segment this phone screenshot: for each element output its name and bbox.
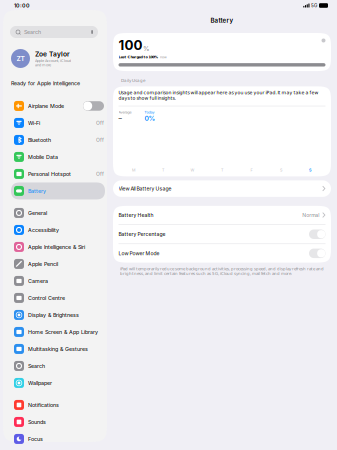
- staticText: T: [221, 168, 223, 172]
- button[interactable]: Low Power Mode: [113, 244, 331, 263]
- staticText: Daily Usage: [121, 78, 146, 83]
- staticText: Low Power Mode: [118, 250, 159, 256]
- staticText: Bluetooth: [28, 137, 51, 143]
- staticText: Search: [24, 29, 41, 35]
- staticText: Wi-Fi: [28, 120, 40, 126]
- button[interactable]: Mobile Data: [11, 148, 105, 165]
- staticText: Wallpaper: [28, 380, 52, 386]
- staticText: F: [250, 168, 252, 172]
- button[interactable]: Battery Health: [113, 206, 331, 224]
- staticText: Usage and comparison insights will appea…: [118, 90, 318, 101]
- button[interactable]: Bluetooth: [11, 131, 105, 148]
- button[interactable]: Airplane Mode: [11, 97, 105, 114]
- staticText: Battery: [28, 188, 46, 194]
- button[interactable]: Apple Pencil: [11, 255, 105, 272]
- button[interactable]: Camera: [11, 272, 105, 289]
- staticText: Apple Pencil: [28, 261, 58, 267]
- staticText: Personal Hotspot: [28, 171, 71, 177]
- button[interactable]: Apple Intelligence & Siri: [11, 238, 105, 255]
- staticText: Airplane Mode: [28, 103, 64, 109]
- button[interactable]: Battery Percentage: [113, 225, 331, 243]
- staticText: and more: [35, 63, 51, 67]
- staticText: Camera: [28, 278, 48, 284]
- staticText: Off: [96, 171, 104, 177]
- staticText: Zoe Taylor: [35, 50, 70, 58]
- button[interactable]: Notifications: [11, 396, 105, 413]
- button[interactable]: General: [11, 204, 105, 221]
- staticText: M: [132, 168, 135, 172]
- staticText: Average: [118, 110, 131, 114]
- button[interactable]: Display & Brightness: [11, 306, 105, 323]
- staticText: Notifications: [28, 402, 59, 408]
- button[interactable]: Personal Hotspot: [11, 165, 105, 182]
- staticText: iPad will temporarily reduce some backgr…: [120, 267, 324, 276]
- staticText: Mobile Data: [28, 154, 58, 160]
- staticText: –: [118, 114, 121, 122]
- button[interactable]: Accessibility: [11, 221, 105, 238]
- staticText: S: [309, 168, 312, 172]
- staticText: ZT: [16, 54, 24, 63]
- staticText: Battery Percentage: [118, 231, 165, 237]
- button[interactable]: Wallpaper: [11, 374, 105, 391]
- staticText: 0%: [144, 114, 155, 122]
- staticText: %: [143, 45, 150, 53]
- staticText: S: [280, 168, 282, 172]
- staticText: Apple Intelligence & Siri: [28, 244, 85, 250]
- button[interactable]: Wi-Fi: [11, 114, 105, 131]
- staticText: Accessibility: [28, 227, 59, 233]
- button[interactable]: View All Battery Usage: [113, 180, 331, 197]
- staticText: Today: [144, 110, 154, 114]
- staticText: View All Battery Usage: [118, 186, 171, 192]
- staticText: Home Screen & App Library: [28, 329, 98, 335]
- staticText: Focus: [28, 436, 43, 442]
- staticText: General: [28, 210, 47, 216]
- button[interactable]: Home Screen & App Library: [11, 323, 105, 340]
- staticText: now: [160, 55, 167, 59]
- staticText: T: [162, 168, 164, 172]
- staticText: Search: [28, 363, 45, 369]
- button[interactable]: Focus: [11, 430, 105, 447]
- button[interactable]: Control Centre: [11, 289, 105, 306]
- staticText: Multitasking & Gestures: [28, 346, 88, 352]
- staticText: Battery Health: [118, 212, 153, 218]
- staticText: Normal: [302, 212, 319, 218]
- staticText: Off: [96, 137, 104, 143]
- button[interactable]: Multitasking & Gestures: [11, 340, 105, 357]
- button[interactable]: Search: [11, 357, 105, 374]
- staticText: 5G: [311, 3, 317, 8]
- staticText: 100: [118, 37, 142, 53]
- button[interactable]: Sounds: [11, 413, 105, 430]
- staticText: W: [190, 168, 194, 172]
- staticText: Last Charged to 100%: [118, 55, 157, 59]
- button[interactable]: Battery: [11, 182, 105, 199]
- staticText: Off: [96, 120, 104, 126]
- staticText: Apple Account, iCloud: [35, 59, 71, 63]
- staticText: Control Centre: [28, 295, 65, 301]
- staticText: Ready for Apple Intelligence: [11, 80, 80, 86]
- staticText: Display & Brightness: [28, 312, 79, 318]
- staticText: 10:00: [14, 2, 30, 9]
- staticText: Battery: [210, 17, 233, 24]
- staticText: Sounds: [28, 419, 46, 425]
